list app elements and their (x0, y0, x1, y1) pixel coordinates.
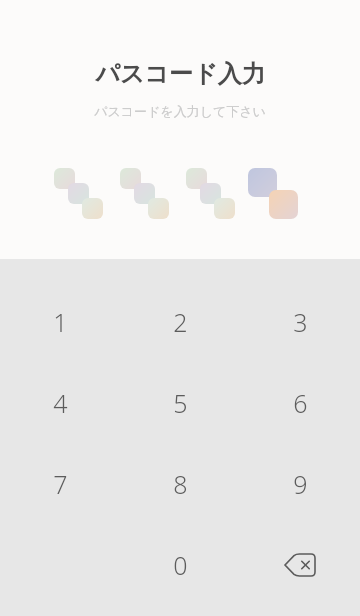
button[interactable]: 1 (0, 281, 120, 362)
staticText: 1 (53, 305, 68, 339)
staticText: パスコードを入力して下さい (94, 103, 266, 119)
staticText: 5 (173, 386, 188, 420)
staticText: 2 (173, 305, 188, 339)
button[interactable]: 3 (240, 281, 360, 362)
button[interactable]: 8 (120, 443, 240, 524)
button[interactable]: 5 (120, 362, 240, 443)
staticText: 4 (53, 386, 68, 420)
staticText: パスコード入力 (95, 59, 266, 89)
staticText: 7 (53, 467, 68, 501)
staticText: 0 (173, 548, 188, 582)
button[interactable]: 6 (240, 362, 360, 443)
staticText: 8 (173, 467, 188, 501)
button[interactable]: 0 (120, 524, 240, 605)
staticText: 9 (293, 467, 308, 501)
button[interactable]: 9 (240, 443, 360, 524)
button[interactable]: 2 (120, 281, 240, 362)
button[interactable]: 7 (0, 443, 120, 524)
staticText: 6 (293, 386, 308, 420)
staticText: 3 (293, 305, 308, 339)
button[interactable]: Delete (240, 524, 360, 605)
button[interactable]: 4 (0, 362, 120, 443)
